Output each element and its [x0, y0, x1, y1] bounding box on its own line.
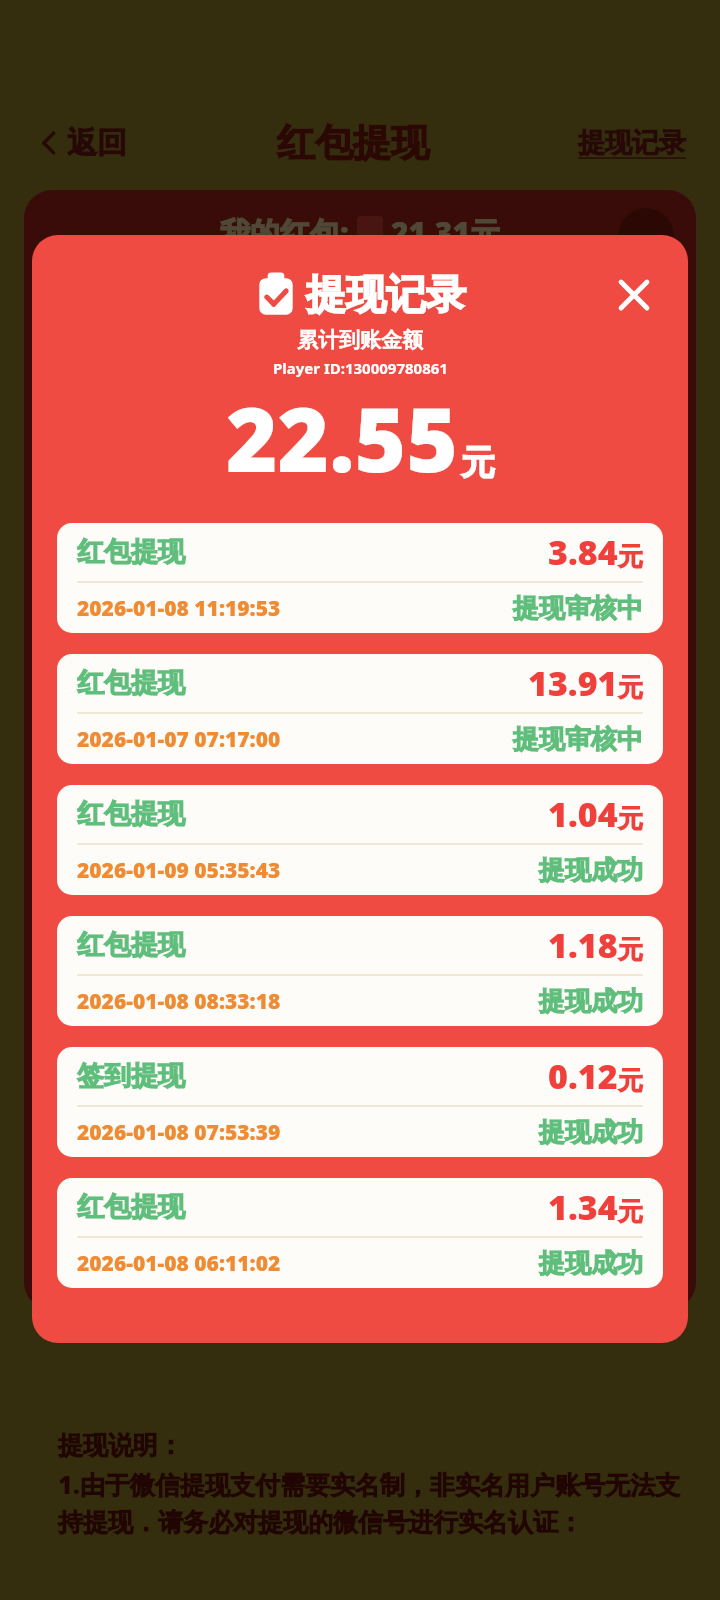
staticText: 2026-01-07 07:17:00 [77, 725, 281, 754]
staticText: 我的红包: [220, 212, 349, 253]
staticText: 红包提现 [77, 1190, 185, 1224]
staticText: 2026-01-08 08:33:18 [77, 987, 281, 1016]
staticText: 红包提现 [77, 666, 185, 700]
button[interactable]: 设置 [618, 208, 674, 264]
staticText: 22.55 [226, 378, 458, 498]
staticText: 元 [618, 1196, 643, 1227]
button[interactable]: 签到提现 [57, 1047, 663, 1157]
staticText: 10% [92, 1178, 177, 1232]
staticText: 2026-01-08 11:19:53 [77, 594, 281, 623]
staticText: 元 [461, 441, 495, 484]
staticText: 累计到账金额 [297, 327, 423, 353]
staticText: 红包提现 [77, 535, 185, 569]
staticText: 1.04 [548, 791, 618, 837]
staticText: 元 [618, 803, 643, 834]
button[interactable]: 提现记录 [574, 122, 690, 164]
staticText: 2026-01-08 06:11:02 [77, 1249, 281, 1278]
staticText: 元 [618, 934, 643, 965]
button[interactable]: 50% [268, 1160, 453, 1280]
staticText: 元 [618, 541, 643, 572]
staticText: 红包提现 [77, 928, 185, 962]
button[interactable]: 红包提现 [57, 916, 663, 1026]
staticText: 可到账10.65元 [294, 1236, 427, 1263]
staticText: 提现审核中 [513, 723, 643, 756]
staticText: 提现审核中 [513, 592, 643, 625]
button[interactable]: 红包提现 [57, 523, 663, 633]
staticText: 1.34 [548, 1184, 618, 1230]
staticText: 1.18 [548, 922, 618, 968]
button[interactable]: 红包提现 [57, 1178, 663, 1288]
staticText: 2026-01-09 05:35:43 [77, 856, 281, 885]
staticText: 提现成功 [539, 854, 643, 887]
button[interactable]: 关闭 [608, 269, 660, 321]
staticText: 签到提现 [77, 1059, 185, 1093]
staticText: 元 [618, 672, 643, 703]
staticText: 可到账25.57元 [519, 1236, 652, 1263]
staticText: 红包提现 [77, 797, 185, 831]
staticText: Player ID:130009780861 [273, 358, 448, 378]
staticText: 0.12 [548, 1053, 618, 1099]
staticText: 3.84 [548, 529, 618, 575]
button[interactable]: 120% [493, 1160, 678, 1280]
button[interactable]: 红包提现 [57, 654, 663, 764]
button[interactable]: 红包提现 [57, 785, 663, 895]
staticText: 红包提现 [277, 119, 429, 167]
staticText: 提现说明： [58, 1430, 183, 1461]
staticText: 可到账2.13元 [74, 1236, 195, 1263]
staticText: 提现记录 [306, 269, 466, 319]
button[interactable]: 返回 [30, 118, 133, 168]
staticText: 返回 [67, 124, 127, 162]
staticText: 21.31元 [391, 212, 500, 253]
staticText: 120% [531, 1178, 640, 1232]
staticText: 提现成功 [539, 1116, 643, 1149]
staticText: 元 [618, 1065, 643, 1096]
staticText: 提现成功 [539, 1247, 643, 1280]
button[interactable]: 10% [42, 1160, 227, 1280]
staticText: 13.91 [528, 660, 618, 706]
staticText: 2026-01-08 07:53:39 [77, 1118, 281, 1147]
staticText: 1.由于微信提现支付需要实名制，非实名用户账号无法支 持提现．请务必对提现的微信… [58, 1467, 680, 1539]
staticText: 提现成功 [539, 985, 643, 1018]
